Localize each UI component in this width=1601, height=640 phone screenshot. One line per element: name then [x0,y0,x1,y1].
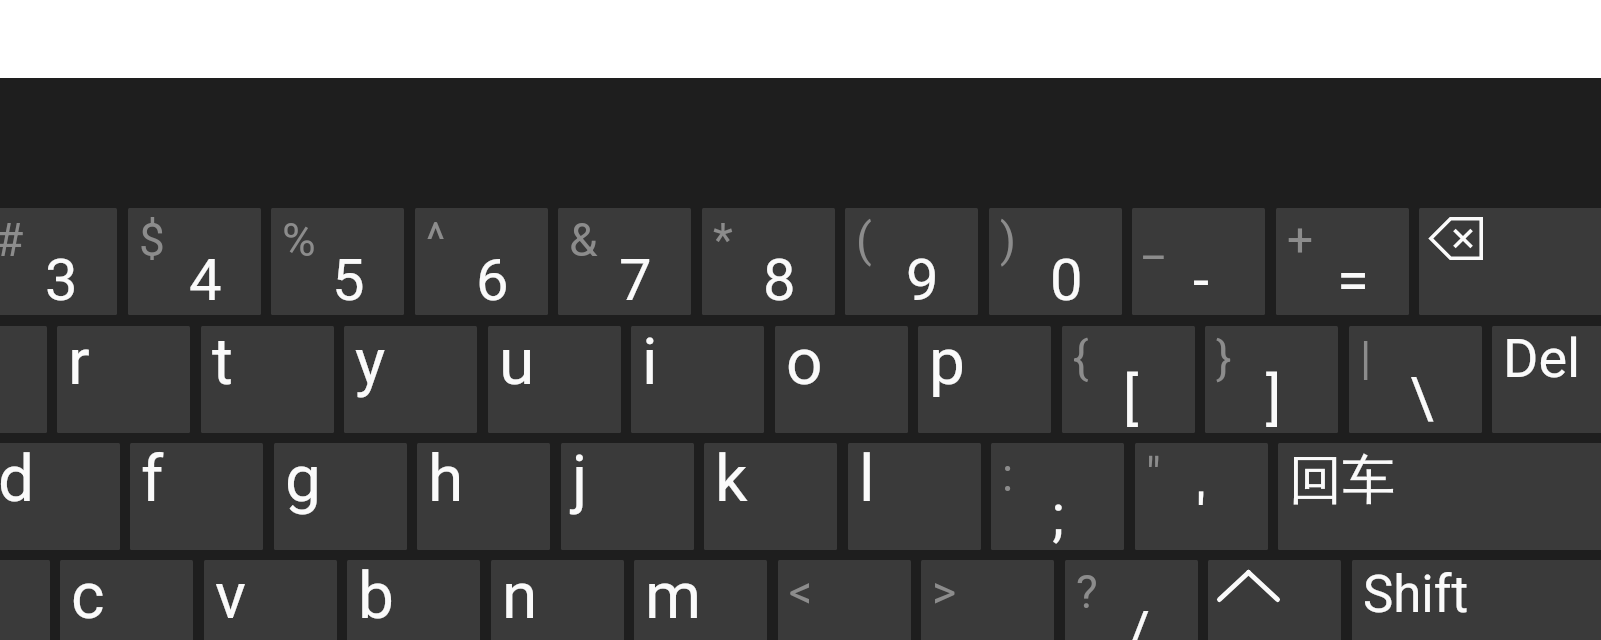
button[interactable]: % [271,208,404,315]
button[interactable]: : [991,443,1124,550]
staticText: g [285,443,321,517]
staticText: 0 [1050,246,1083,314]
button[interactable]: < [778,560,911,640]
staticText: $ [139,213,165,267]
staticText: " [1146,448,1161,502]
staticText: ' [1196,481,1207,549]
button[interactable]: i [631,326,764,433]
button[interactable]: p [918,326,1051,433]
staticText: ; [1052,481,1065,549]
staticText: Del [1503,327,1581,390]
button[interactable]: ? [1065,560,1198,640]
staticText: c [71,560,105,634]
staticText: o [786,326,823,400]
staticText: v [215,560,246,634]
staticText: ^ [426,213,446,267]
staticText: Shift [1363,565,1469,625]
staticText: * [713,213,733,267]
button[interactable]: { [1062,326,1195,433]
staticText: _ [1143,213,1164,267]
button[interactable]: * [702,208,835,315]
button[interactable]: f [130,443,263,550]
staticText: # [0,213,24,267]
button[interactable]: k [704,443,837,550]
button[interactable]: o [775,326,908,433]
staticText: b [358,560,394,634]
button[interactable]: _ [1132,208,1265,315]
staticText: 6 [476,246,509,314]
button[interactable]: } [1205,326,1338,433]
staticText: < [789,565,813,619]
button[interactable]: & [558,208,691,315]
button[interactable]: > [921,560,1054,640]
staticText: f [141,443,164,517]
button[interactable]: Shift [1352,560,1601,640]
staticText: j [572,443,588,517]
staticText: - [1193,246,1210,314]
staticText: 回车 [1289,447,1395,514]
staticText: ) [1000,213,1017,267]
button[interactable]: l [848,443,981,550]
button[interactable]: # [0,208,117,315]
staticText: [ [1123,364,1139,432]
staticText: d [0,443,35,517]
staticText: ? [1076,565,1098,619]
button[interactable]: h [417,443,550,550]
button[interactable]: u [488,326,621,433]
staticText: 9 [906,246,939,314]
button[interactable]: g [274,443,407,550]
staticText: y [355,326,386,400]
button[interactable]: n [491,560,624,640]
staticText: / [1126,598,1150,640]
staticText: u [499,326,535,400]
staticText: k [715,443,748,517]
button[interactable]: ) [989,208,1122,315]
button[interactable]: c [60,560,193,640]
button[interactable]: $ [128,208,261,315]
staticText: n [502,560,538,634]
staticText: } [1216,331,1232,385]
staticText: \ [1410,364,1434,432]
staticText: | [1360,331,1372,385]
button[interactable]: Backspace [1419,208,1601,315]
staticText: m [645,560,702,634]
button[interactable]: + [1276,208,1409,315]
staticText: = [1337,246,1369,314]
button[interactable]: ^ [415,208,548,315]
button[interactable]: d [0,443,120,550]
staticText: l [859,443,875,517]
staticText: % [282,213,316,267]
button[interactable]: 回车 [1278,443,1601,550]
button[interactable]: " [1135,443,1268,550]
staticText: + [1287,213,1314,267]
staticText: 5 [332,246,365,314]
staticText: & [569,213,598,267]
staticText: t [212,326,233,400]
button[interactable]: v [204,560,337,640]
staticText: i [642,326,658,400]
button[interactable]: j [561,443,694,550]
button[interactable]: | [1349,326,1482,433]
button[interactable]: y [344,326,477,433]
button[interactable]: m [634,560,767,640]
button[interactable]: Shift up [1208,560,1341,640]
staticText: 3 [45,246,78,314]
button[interactable]: t [201,326,334,433]
staticText: 7 [619,246,652,314]
staticText: : [1002,448,1014,502]
staticText: > [932,565,957,619]
staticText: 4 [189,246,222,314]
button[interactable]: r [57,326,190,433]
staticText: ( [856,213,872,267]
button[interactable]: b [347,560,480,640]
staticText: { [1073,331,1089,385]
staticText: r [68,326,90,400]
staticText: h [428,443,464,517]
button[interactable]: Del [1492,326,1601,433]
staticText: ] [1266,364,1282,432]
button[interactable]: ( [845,208,978,315]
